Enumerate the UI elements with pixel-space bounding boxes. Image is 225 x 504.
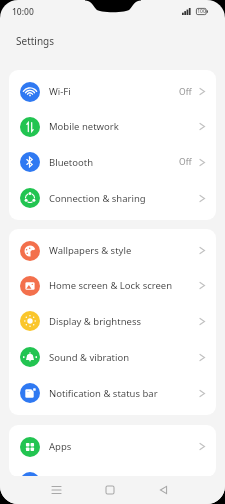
staticText: Wallpapers & style — [49, 244, 132, 257]
button[interactable]: Back — [145, 479, 181, 501]
staticText: Display & brightness — [49, 315, 141, 328]
staticText: Wi-Fi — [49, 85, 71, 98]
button[interactable]: Notification & status bar — [9, 375, 216, 411]
staticText: Mobile network — [49, 120, 119, 133]
button[interactable]: Home screen & Lock screen — [9, 268, 216, 303]
button[interactable]: Bluetooth — [9, 144, 216, 180]
staticText: Connection & sharing — [49, 192, 146, 205]
staticText: Settings — [16, 34, 55, 48]
staticText: Bluetooth — [49, 156, 94, 169]
staticText: Sound & vibration — [49, 351, 130, 364]
staticText: Off — [179, 86, 192, 98]
staticText: Passwords & security — [49, 475, 144, 477]
staticText: 100 — [197, 8, 206, 15]
button[interactable]: Mobile network — [9, 109, 216, 144]
button[interactable]: Sound & vibration — [9, 339, 216, 375]
staticText: Notification & status bar — [49, 387, 158, 400]
staticText: 10:00 — [12, 6, 34, 18]
button[interactable]: Display & brightness — [9, 303, 216, 339]
button[interactable]: Apps — [9, 429, 216, 464]
staticText: Home screen & Lock screen — [49, 279, 173, 292]
button[interactable]: Wi-Fi — [9, 74, 216, 109]
button[interactable]: Wallpapers & style — [9, 233, 216, 268]
staticText: Off — [179, 156, 192, 168]
button[interactable]: Connection & sharing — [9, 180, 216, 216]
staticText: Apps — [49, 440, 72, 453]
button[interactable]: Passwords & security — [9, 464, 216, 477]
button[interactable]: Recents — [38, 479, 74, 501]
button[interactable]: Home — [92, 479, 128, 501]
